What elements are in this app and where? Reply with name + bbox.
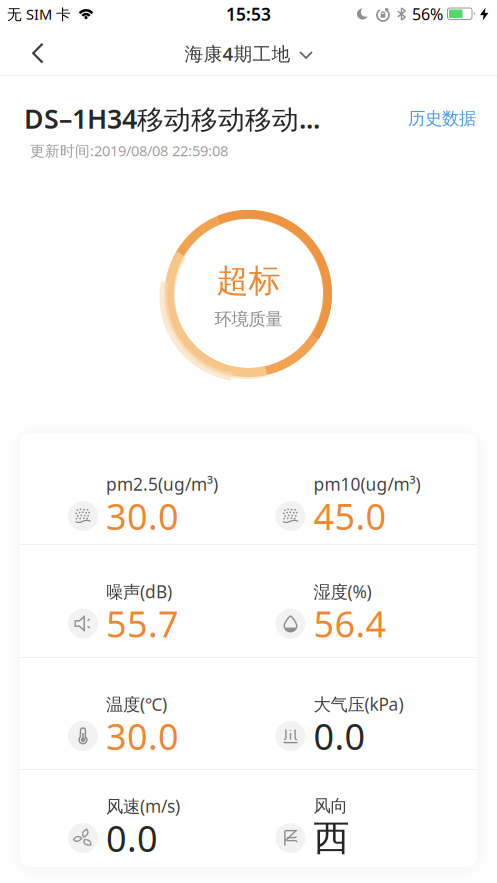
staticText: 噪声(dB) [106, 580, 172, 603]
staticText: 0.0 [106, 814, 158, 862]
staticText: pm2.5(ug/m³) [106, 472, 218, 495]
staticText: 56.4 [313, 600, 386, 647]
staticText: 湿度(%) [313, 580, 371, 603]
staticText: 温度(℃) [106, 692, 167, 715]
staticText: 大气压(kPa) [313, 692, 403, 715]
button[interactable]: 历史数据 [408, 108, 476, 129]
staticText: 超标 [216, 261, 280, 300]
staticText: 55.7 [106, 600, 179, 647]
staticText: 0.0 [313, 712, 365, 760]
staticText: 环境质量 [214, 308, 282, 330]
staticText: 更新时间:2019/08/08 22:59:08 [30, 141, 228, 160]
staticText: 30.0 [106, 492, 179, 540]
staticText: 15:53 [226, 2, 271, 25]
staticText: 风速(m/s) [106, 794, 180, 817]
staticText: 风向 [313, 795, 347, 817]
staticText: 30.0 [106, 712, 179, 760]
staticText: pm10(ug/m³) [313, 472, 420, 495]
staticText: 海康4期工地 [184, 41, 290, 66]
staticText: DS–1H34移动移动移动... [24, 101, 320, 136]
staticText: 西 [313, 816, 349, 860]
button[interactable]: Back [0, 33, 44, 74]
button[interactable]: 海康4期工地 [184, 41, 312, 66]
staticText: 45.0 [313, 492, 386, 540]
staticText: 56% [412, 3, 443, 25]
staticText: 历史数据 [408, 108, 476, 129]
staticText: 无 SIM 卡 [7, 4, 71, 24]
